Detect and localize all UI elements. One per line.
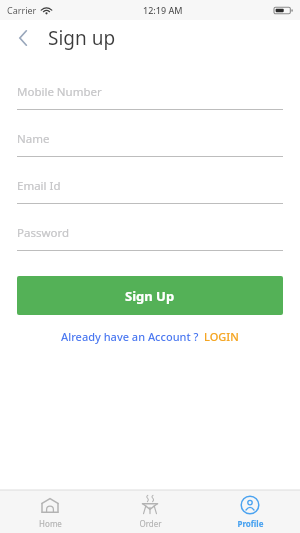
button[interactable]: Mobile Number	[17, 84, 283, 110]
button[interactable]: Name	[17, 131, 283, 157]
button[interactable]: Password	[17, 225, 283, 251]
button[interactable]: Sign Up	[17, 276, 283, 315]
button[interactable]: Profile	[200, 490, 300, 533]
button[interactable]: Already have an Account ?	[61, 329, 239, 344]
staticText: Name	[17, 131, 50, 147]
staticText: 12:19 AM	[143, 4, 183, 16]
button[interactable]: Back	[8, 23, 38, 53]
staticText: Carrier	[7, 4, 37, 16]
staticText: Profile	[237, 518, 264, 529]
staticText: Password	[17, 225, 70, 241]
staticText: Sign up	[48, 25, 116, 51]
staticText: Already have an Account ?	[61, 329, 199, 344]
staticText: Email Id	[17, 178, 61, 194]
staticText: Home	[39, 518, 62, 529]
staticText: Order	[139, 518, 162, 529]
button[interactable]: Email Id	[17, 178, 283, 204]
staticText: Mobile Number	[17, 84, 102, 100]
button[interactable]: Home	[0, 490, 100, 533]
staticText: Sign Up	[125, 287, 175, 305]
staticText: LOGIN	[204, 329, 239, 344]
button[interactable]: Order	[100, 490, 200, 533]
